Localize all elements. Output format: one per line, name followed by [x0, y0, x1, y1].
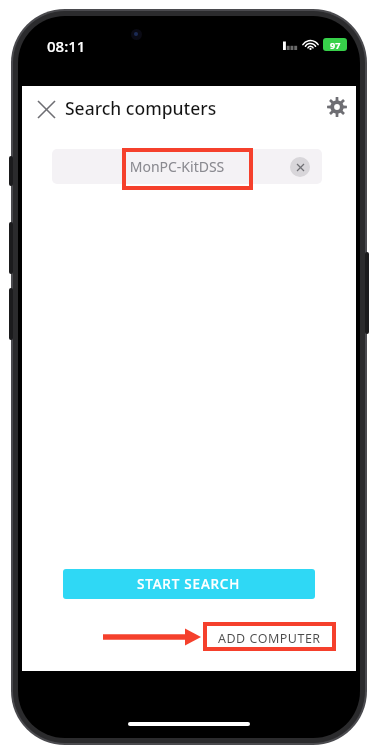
staticText: MonPC-KitDSS [64, 157, 290, 176]
staticText: 97 [330, 39, 341, 51]
button[interactable]: MonPC-KitDSS [52, 149, 322, 184]
button[interactable]: ADD COMPUTER [207, 626, 332, 650]
staticText: ADD COMPUTER [218, 630, 321, 647]
button[interactable]: START SEARCH [63, 569, 315, 599]
staticText: START SEARCH [137, 575, 241, 593]
staticText: Search computers [65, 96, 217, 120]
button[interactable]: Settings [322, 92, 352, 122]
button[interactable]: Remove [290, 157, 310, 177]
button[interactable]: Close [32, 95, 60, 123]
staticText: 08:11 [47, 36, 86, 56]
